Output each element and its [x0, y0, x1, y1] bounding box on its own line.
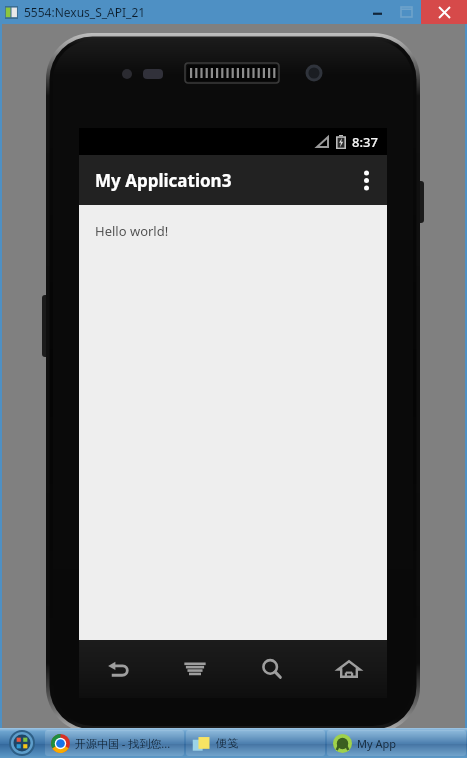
button[interactable]: Menu	[156, 640, 233, 698]
button[interactable]: Start	[0, 728, 44, 758]
button[interactable]: Close	[421, 0, 467, 24]
button[interactable]: Back	[79, 640, 156, 698]
staticText: Hello world!	[95, 222, 169, 240]
button[interactable]: 开源中国 - 找到您...	[45, 730, 184, 756]
button[interactable]: Home	[310, 640, 387, 698]
staticText: 便笺	[216, 736, 238, 750]
button[interactable]: More options	[345, 155, 387, 205]
staticText: 开源中国 - 找到您...	[75, 736, 171, 751]
button[interactable]: My App	[327, 730, 466, 756]
staticText: 8:37	[352, 133, 378, 151]
button[interactable]: 便笺	[186, 730, 325, 756]
staticText: 5554:Nexus_S_API_21	[24, 4, 146, 20]
button[interactable]: Maximize	[392, 0, 421, 24]
staticText: My Application3	[95, 169, 232, 192]
staticText: My App	[357, 736, 397, 751]
button[interactable]: Search	[233, 640, 310, 698]
button[interactable]: Minimize	[363, 0, 392, 24]
